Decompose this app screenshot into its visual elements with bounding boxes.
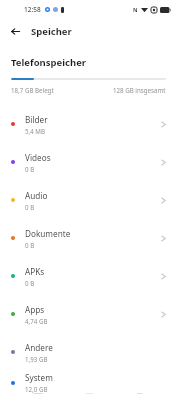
staticText: 0 B <box>25 279 35 287</box>
staticText: 1,93 GB <box>25 355 48 363</box>
staticText: 12:58 <box>24 5 41 14</box>
button[interactable]: Videos <box>0 143 177 181</box>
staticText: Telefonspeicher <box>11 56 87 69</box>
staticText: 12,0 GB <box>25 385 48 393</box>
staticText: Dokumente <box>25 228 71 239</box>
staticText: 18,7 GB Belegt <box>11 86 54 94</box>
staticText: 4,74 GB <box>25 317 48 325</box>
staticText: N <box>133 6 138 13</box>
staticText: Speicher <box>31 25 72 38</box>
button[interactable]: Dokumente <box>0 219 177 257</box>
button[interactable]: Bilder <box>0 105 177 143</box>
staticText: APKs <box>25 266 45 277</box>
button[interactable]: Apps <box>0 295 177 333</box>
button[interactable]: System <box>0 371 177 394</box>
staticText: 0 B <box>25 203 35 211</box>
staticText: 5,4 MB <box>25 127 45 135</box>
staticText: System <box>25 372 53 383</box>
staticText: Andere <box>25 342 53 353</box>
staticText: Videos <box>25 152 51 163</box>
button[interactable]: Zurück <box>5 21 25 41</box>
button[interactable]: Andere <box>0 333 177 371</box>
staticText: Audio <box>25 190 48 201</box>
staticText: Bilder <box>25 114 48 125</box>
staticText: 0 B <box>25 241 35 249</box>
staticText: 128 GB insgesamt <box>113 86 166 94</box>
button[interactable]: Audio <box>0 181 177 219</box>
staticText: 0 B <box>25 165 35 173</box>
button[interactable]: APKs <box>0 257 177 295</box>
staticText: Apps <box>25 304 45 315</box>
